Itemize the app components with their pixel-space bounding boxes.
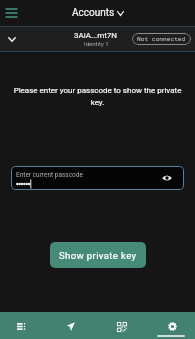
button[interactable]: Settings bbox=[146, 312, 195, 339]
staticText: Enter current passcode bbox=[16, 171, 83, 179]
button[interactable]: Accounts bbox=[0, 312, 48, 339]
button[interactable]: Accounts bbox=[68, 5, 128, 21]
button[interactable]: Open navigation menu bbox=[0, 0, 22, 26]
button[interactable]: Send bbox=[48, 312, 97, 339]
button[interactable]: Not connected bbox=[132, 33, 191, 45]
staticText: Show private key bbox=[59, 250, 137, 261]
staticText: 3AiA...mt7N bbox=[74, 31, 118, 40]
button[interactable]: Receive bbox=[97, 312, 146, 339]
button[interactable]: Expand account list bbox=[0, 27, 195, 51]
staticText: Please enter your passcode to show the p… bbox=[11, 86, 184, 107]
button[interactable]: Show private key bbox=[50, 242, 146, 268]
button[interactable]: Expand account list bbox=[0, 27, 24, 51]
staticText: Accounts bbox=[72, 7, 115, 19]
staticText: Identity 1 bbox=[84, 40, 109, 47]
button[interactable]: Show passcode bbox=[159, 170, 175, 186]
button[interactable]: Enter current passcode bbox=[11, 166, 184, 190]
staticText: Not connected bbox=[137, 35, 186, 43]
